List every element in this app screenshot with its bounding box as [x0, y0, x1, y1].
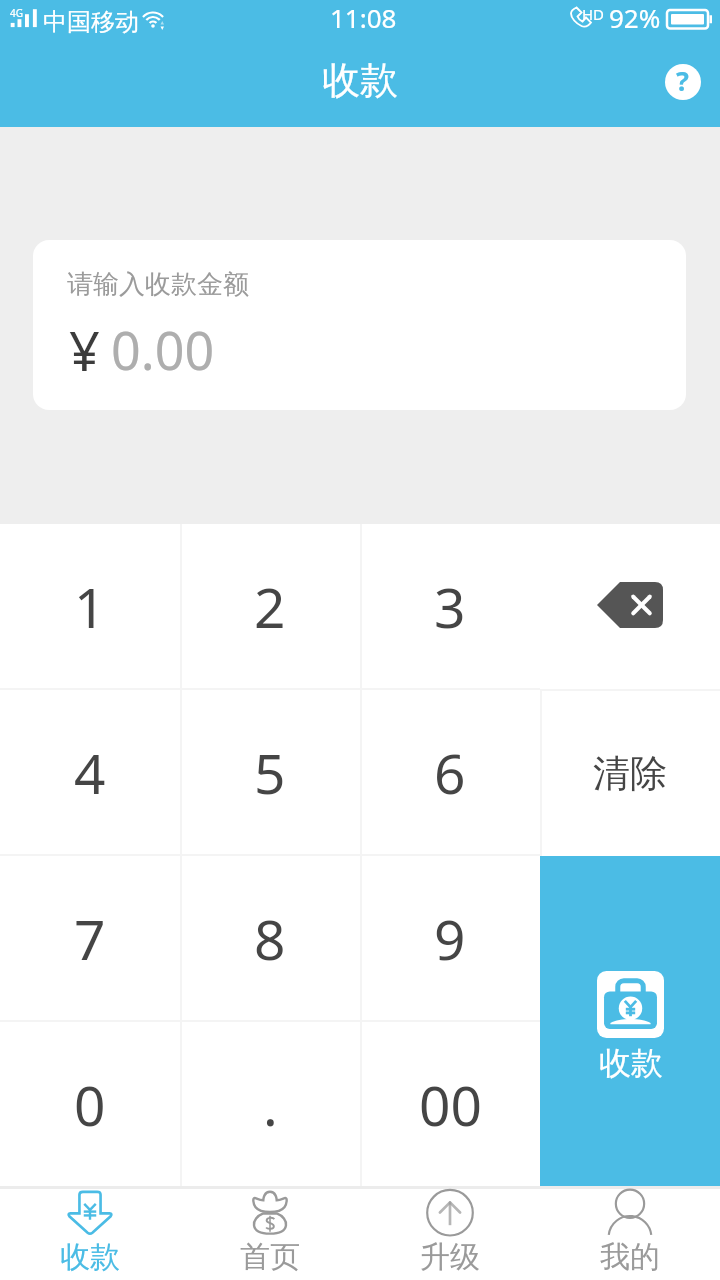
staticText: ?: [676, 62, 689, 99]
staticText: .: [263, 1067, 278, 1142]
staticText: 9: [434, 901, 466, 976]
staticText: 我的: [600, 1238, 660, 1276]
button[interactable]: 5: [180, 690, 360, 854]
staticText: 0: [74, 1067, 106, 1142]
staticText: 1: [74, 569, 106, 644]
staticText: 00: [419, 1067, 482, 1142]
staticText: ¥: [69, 313, 100, 387]
staticText: 清除: [593, 750, 667, 797]
staticText: 8: [254, 901, 286, 976]
button[interactable]: 4: [0, 690, 180, 854]
staticText: 92%: [609, 0, 661, 35]
button[interactable]: Help: [655, 54, 710, 109]
button[interactable]: 8: [180, 856, 360, 1020]
button[interactable]: 收款: [0, 1189, 180, 1280]
button[interactable]: 00: [360, 1022, 540, 1186]
staticText: 11:08: [330, 0, 397, 35]
staticText: 中国移动: [43, 7, 139, 37]
button[interactable]: 我的: [540, 1189, 720, 1280]
staticText: 4G: [10, 6, 23, 20]
button[interactable]: 7: [0, 856, 180, 1020]
button[interactable]: 清除: [540, 691, 720, 856]
staticText: 4: [74, 735, 106, 810]
staticText: 收款: [322, 56, 398, 104]
button[interactable]: 1: [0, 524, 180, 688]
button[interactable]: 2: [180, 524, 360, 688]
button[interactable]: 收款: [540, 856, 720, 1186]
button[interactable]: 9: [360, 856, 540, 1020]
button[interactable]: Backspace: [540, 524, 720, 689]
button[interactable]: 3: [360, 524, 540, 688]
button[interactable]: 升级: [360, 1189, 540, 1280]
staticText: 收款: [599, 1043, 663, 1083]
staticText: 首页: [240, 1238, 300, 1276]
staticText: 升级: [420, 1238, 480, 1276]
staticText: 7: [74, 901, 106, 976]
staticText: 请输入收款金额: [67, 268, 249, 301]
button[interactable]: 6: [360, 690, 540, 854]
staticText: 2: [254, 569, 286, 644]
button[interactable]: .: [180, 1022, 360, 1186]
staticText: 5: [254, 735, 286, 810]
button[interactable]: 请输入收款金额: [33, 240, 686, 410]
staticText: 3: [434, 569, 466, 644]
staticText: 6: [434, 735, 466, 810]
button[interactable]: 首页: [180, 1189, 360, 1280]
button[interactable]: 0: [0, 1022, 180, 1186]
staticText: HD: [582, 4, 605, 24]
staticText: 0.00: [111, 314, 215, 385]
staticText: 收款: [60, 1238, 120, 1276]
